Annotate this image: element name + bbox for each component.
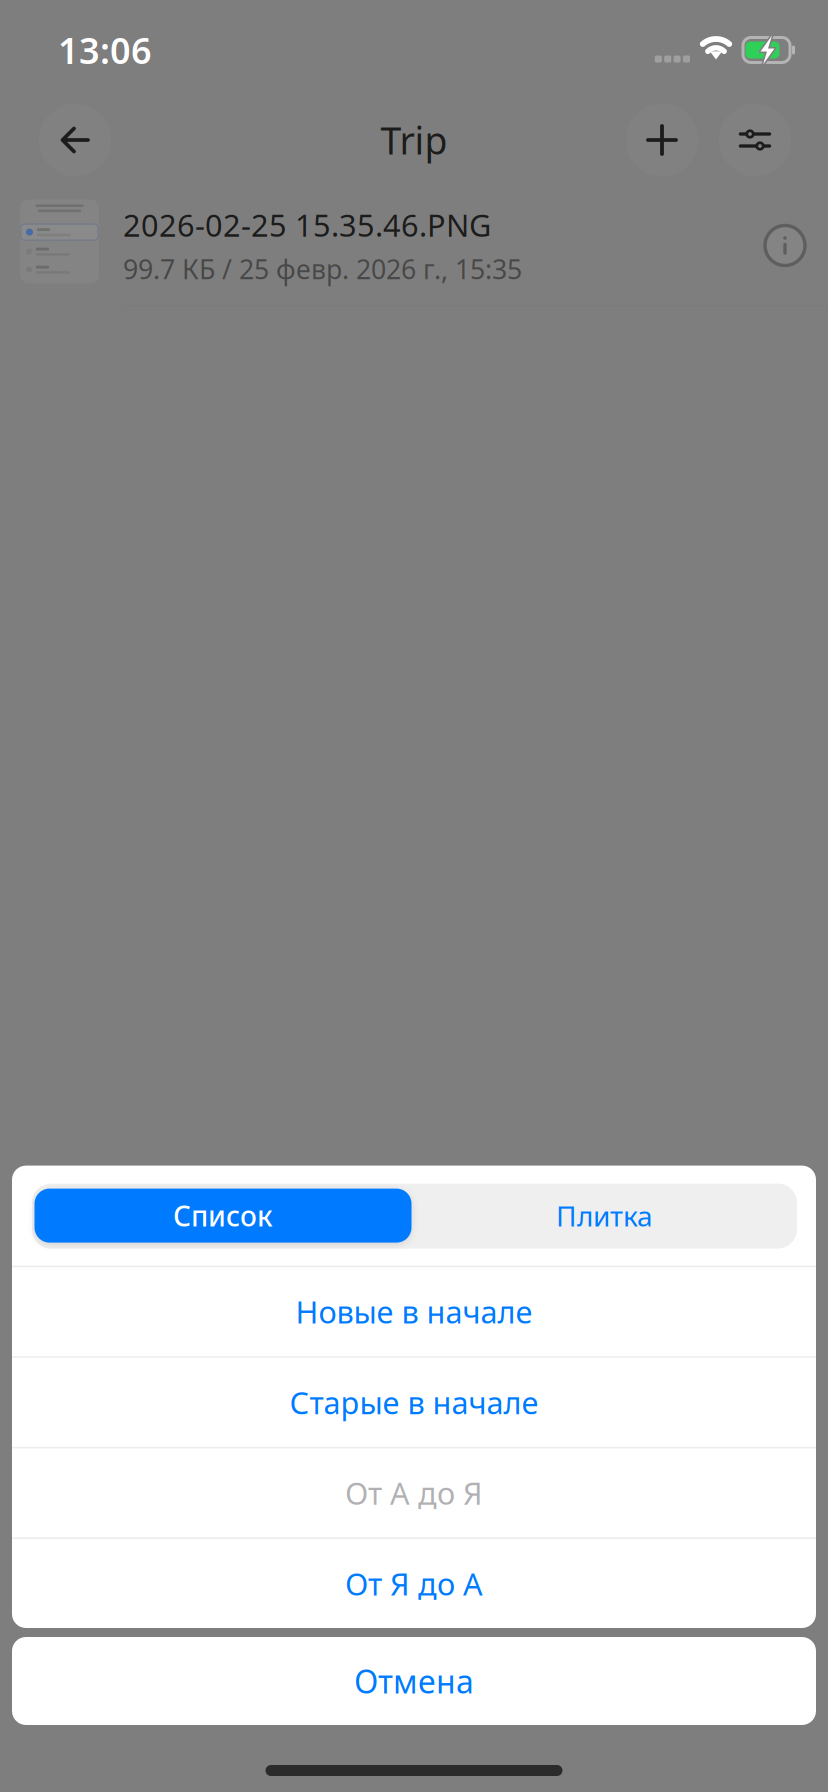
staticText: Старые в начале [289,1382,538,1423]
button[interactable]: От А до Я [12,1448,816,1537]
staticText: Новые в начале [295,1291,532,1332]
button[interactable]: Отмена [12,1637,816,1725]
staticText: 13:06 [58,26,152,74]
staticText: Плитка [556,1197,653,1234]
button[interactable]: От Я до А [12,1539,816,1628]
button[interactable]: Back [39,104,111,176]
staticText: От Я до А [345,1563,483,1604]
staticText: 99.7 КБ / 25 февр. 2026 г., 15:35 [123,251,522,287]
button[interactable]: Старые в начале [12,1358,816,1447]
button[interactable]: Add [626,104,698,176]
button[interactable]: Список [34,1189,414,1243]
staticText: Отмена [354,1660,474,1702]
staticText: От А до Я [345,1472,483,1513]
button[interactable]: 2026-02-25 15.35.46.PNG [0,184,828,305]
button[interactable]: Плитка [414,1189,794,1243]
staticText: 2026-02-25 15.35.46.PNG [123,204,491,245]
staticText: Trip [380,115,447,165]
button[interactable]: View options [719,104,791,176]
button[interactable]: Новые в начале [12,1267,816,1356]
button[interactable]: File info [755,215,815,275]
staticText: Список [173,1197,273,1234]
